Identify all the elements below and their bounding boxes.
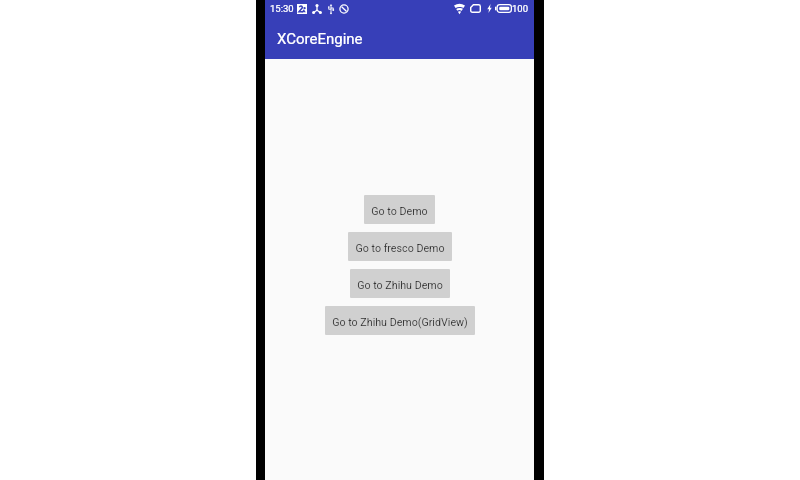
other: Charging <box>487 4 492 13</box>
staticText: 100 <box>512 3 529 14</box>
button[interactable]: Go to Demo <box>364 195 435 224</box>
other: Cast <box>312 4 322 14</box>
button[interactable]: Go to Zhihu Demo(GridView) <box>325 306 475 335</box>
staticText: Go to Zhihu Demo(GridView) <box>332 316 468 329</box>
other: USB connected <box>328 4 334 14</box>
other: Screen cast <box>470 4 481 13</box>
button[interactable]: Go to Zhihu Demo <box>350 269 450 298</box>
staticText: Go to Zhihu Demo <box>357 279 443 292</box>
other: Do not disturb <box>339 4 349 14</box>
staticText: 15:30 <box>270 3 294 14</box>
staticText: Go to Demo <box>371 205 428 218</box>
staticText: Go to fresco Demo <box>355 242 445 255</box>
button[interactable]: Go to fresco Demo <box>348 232 452 261</box>
other: Screenshot saved <box>297 4 307 14</box>
staticText: XCoreEngine <box>277 30 363 48</box>
other: Wi-Fi <box>454 4 465 14</box>
other: Battery full <box>495 4 512 13</box>
